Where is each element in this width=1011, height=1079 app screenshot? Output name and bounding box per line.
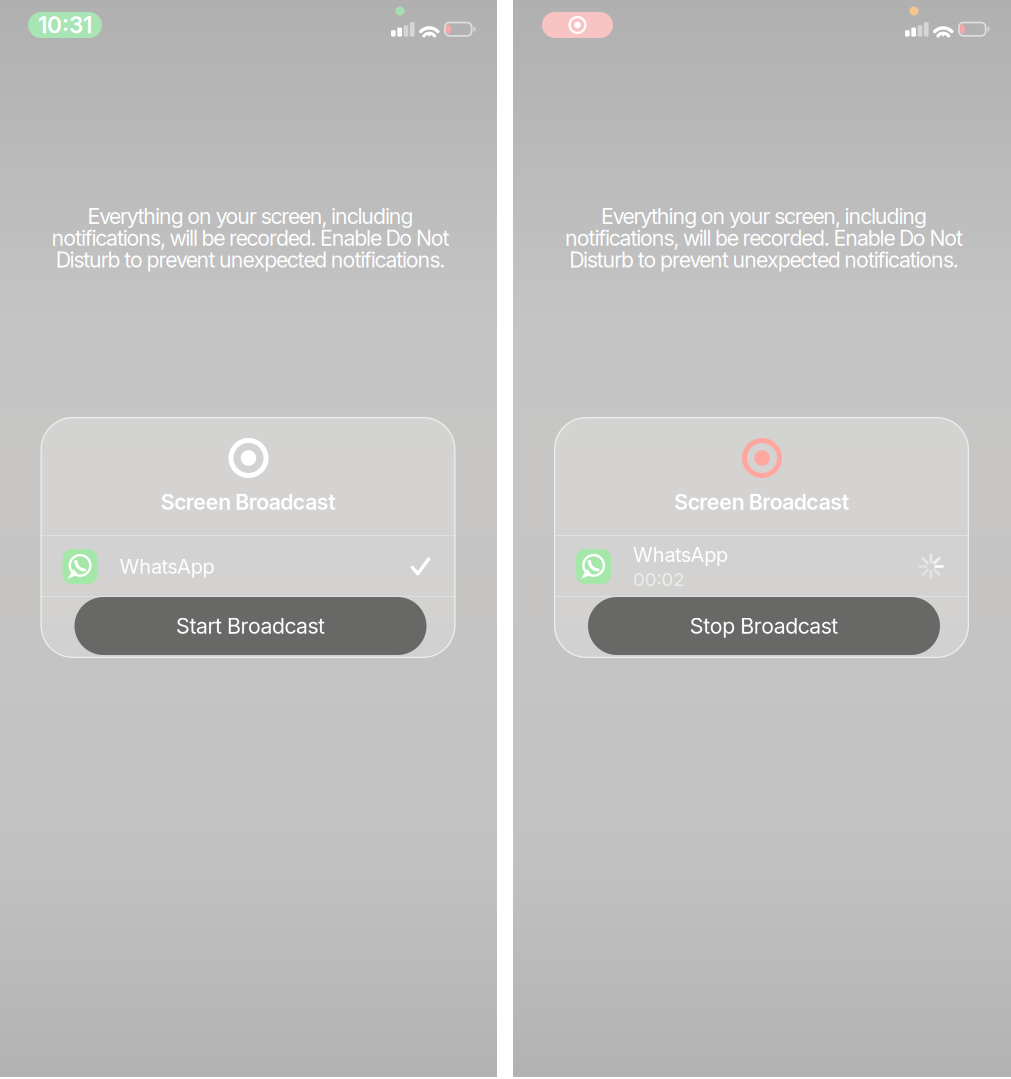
staticText: Disturb to prevent unexpected notificati… (56, 247, 445, 273)
staticText: Disturb to prevent unexpected notificati… (569, 247, 959, 273)
staticText: Screen Broadcast (674, 489, 850, 515)
staticText: notifications, will be recorded. Enable … (51, 225, 449, 251)
staticText: 00:02 (633, 568, 684, 590)
staticText: WhatsApp (633, 543, 728, 567)
staticText: Stop Broadcast (690, 613, 838, 639)
staticText: Screen Broadcast (161, 489, 336, 515)
staticText: WhatsApp (119, 554, 214, 579)
staticText: Everything on your screen, including (601, 203, 927, 229)
staticText: Everything on your screen, including (87, 203, 413, 229)
staticText: 10:31 (38, 11, 92, 39)
button[interactable]: Stop Broadcast (588, 597, 940, 655)
staticText: notifications, will be recorded. Enable … (565, 225, 963, 251)
staticText: Start Broadcast (176, 613, 325, 639)
button[interactable]: Start Broadcast (74, 597, 426, 655)
